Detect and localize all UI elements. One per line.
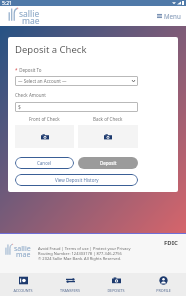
button[interactable]: Cancel — [15, 157, 74, 169]
staticText: Deposit — [100, 160, 117, 166]
staticText: 5:21 — [2, 0, 12, 6]
staticText: sallie — [19, 8, 40, 20]
staticText: PROFILE — [156, 288, 171, 293]
staticText: mae — [16, 250, 31, 260]
button[interactable]: DEPOSITS — [93, 273, 139, 296]
staticText: DEPOSITS — [107, 288, 125, 293]
staticText: — Select an Account — — [18, 78, 67, 84]
staticText: Menu — [164, 12, 181, 20]
staticText: Deposit a Check — [15, 43, 87, 56]
staticText: sallie — [14, 244, 31, 254]
staticText: Deposit To — [18, 67, 42, 73]
staticText: Cancel — [37, 160, 52, 166]
button[interactable]: Capture Front of Check — [15, 125, 74, 148]
button[interactable]: Deposit — [78, 157, 138, 169]
button[interactable]: Menu — [157, 12, 181, 20]
staticText: Front of Check — [29, 116, 60, 122]
staticText: ACCOUNTS — [13, 288, 33, 293]
staticText: TRANSFERS — [60, 288, 80, 293]
staticText: Check Amount — [15, 92, 46, 98]
button[interactable]: $ — [15, 102, 138, 112]
button[interactable]: — Select an Account — — [15, 76, 138, 86]
staticText: mae — [22, 15, 40, 27]
staticText: © 2024 Sallie Mae Bank. All Rights Reser… — [38, 256, 122, 261]
button[interactable]: View Deposit History — [15, 174, 138, 186]
button[interactable]: PROFILE — [140, 273, 186, 296]
button[interactable]: TRANSFERS — [47, 273, 93, 296]
button[interactable]: Capture Back of Check — [78, 125, 138, 148]
staticText: * — [15, 67, 18, 73]
staticText: $ — [18, 104, 21, 111]
staticText: Avoid Fraud | Terms of use | Protect you… — [38, 246, 131, 251]
staticText: Back of Check — [93, 116, 123, 122]
staticText: FDIC — [164, 239, 178, 247]
staticText: Routing Number: 124303178 | 877-346-2756 — [38, 251, 122, 256]
button[interactable]: ACCOUNTS — [0, 273, 46, 296]
staticText: View Deposit History — [55, 177, 99, 183]
